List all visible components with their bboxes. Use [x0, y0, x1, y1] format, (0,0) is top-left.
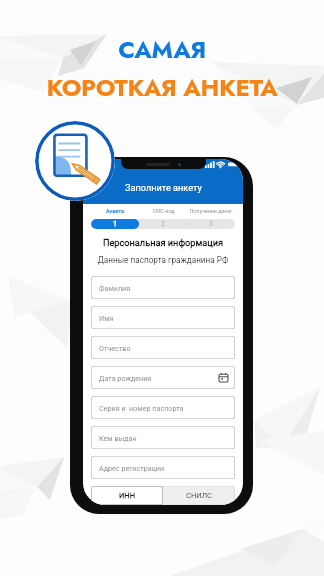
staticText: Персональная информация: [83, 237, 243, 248]
button[interactable]: 2: [139, 219, 187, 229]
staticText: Данные паспорта гражданина РФ: [83, 255, 243, 265]
button[interactable]: Серия и номер паспорта: [91, 396, 235, 419]
staticText: Дата рождения: [99, 374, 152, 382]
staticText: Отчество: [99, 344, 131, 352]
staticText: 1: [113, 220, 117, 228]
button[interactable]: Адрес регистрации: [91, 456, 235, 479]
button[interactable]: Заполнить анкету: [35, 121, 115, 201]
button[interactable]: СНИЛС: [163, 486, 235, 505]
staticText: Заполните анкету: [125, 182, 202, 193]
staticText: Кем выдан: [99, 434, 137, 442]
button[interactable]: ИНН: [91, 486, 163, 505]
staticText: Имя: [99, 314, 114, 322]
button[interactable]: Дата рождения: [91, 366, 235, 389]
staticText: ИНН: [119, 491, 136, 500]
staticText: САМАЯ: [0, 32, 324, 67]
button[interactable]: 3: [187, 219, 235, 229]
button[interactable]: 1: [91, 219, 139, 229]
staticText: Получение денег: [189, 208, 233, 214]
button[interactable]: Отчество: [91, 336, 235, 359]
button[interactable]: Назад: [90, 185, 98, 193]
staticText: КОРОТКАЯ АНКЕТА: [0, 70, 324, 105]
staticText: Адрес регистрации: [99, 464, 165, 472]
staticText: 2: [161, 220, 165, 228]
staticText: Фамилия: [99, 284, 131, 292]
staticText: Серия и номер паспорта: [99, 404, 184, 412]
button[interactable]: Фамилия: [91, 276, 235, 299]
button[interactable]: Имя: [91, 306, 235, 329]
staticText: Анкета: [106, 208, 124, 214]
staticText: 3: [209, 220, 213, 228]
staticText: СНИЛС: [186, 491, 212, 500]
button[interactable]: Кем выдан: [91, 426, 235, 449]
staticText: СМС-код: [152, 208, 175, 214]
